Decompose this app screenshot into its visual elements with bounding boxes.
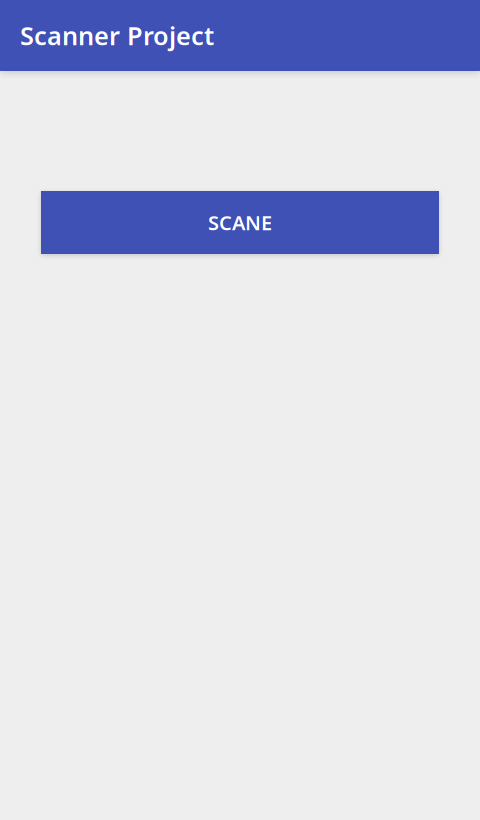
staticText: SCANE <box>208 209 272 236</box>
button[interactable]: SCANE <box>41 191 439 254</box>
staticText: Scanner Project <box>20 19 214 52</box>
